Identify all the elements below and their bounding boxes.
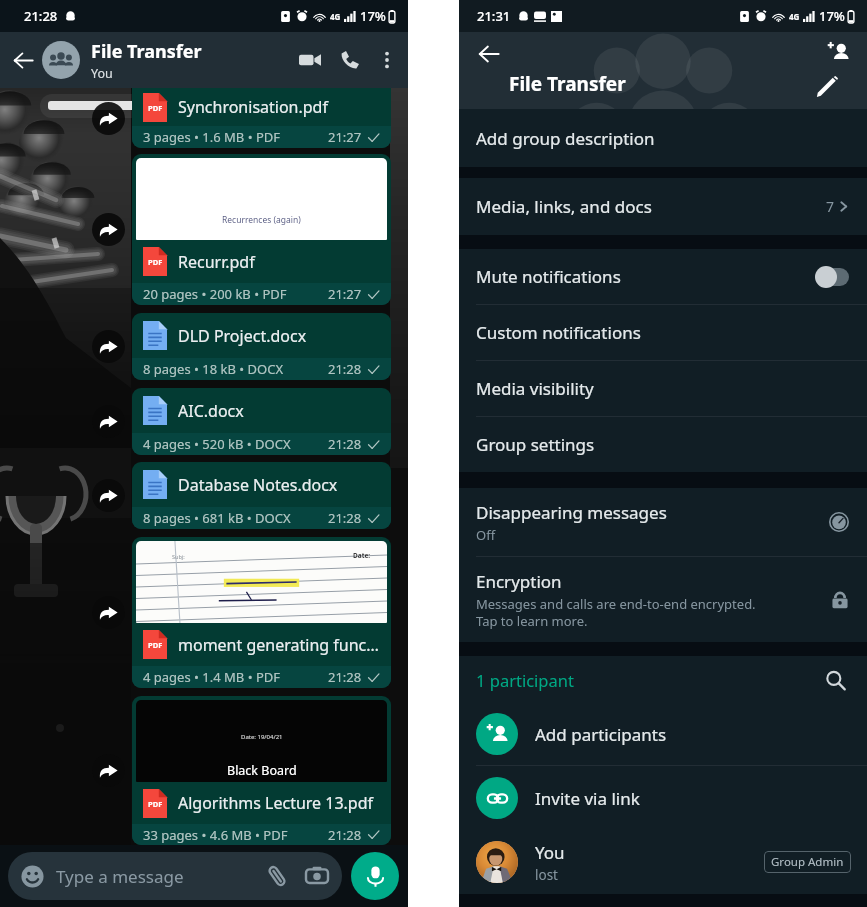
staticText: 21:28 xyxy=(328,360,362,378)
button[interactable]: Add participant xyxy=(821,35,855,69)
staticText: 7 xyxy=(826,197,835,216)
button[interactable]: You xyxy=(459,830,867,894)
button[interactable]: Forward xyxy=(92,596,125,629)
staticText: Custom notifications xyxy=(476,321,641,344)
staticText: 21:28 xyxy=(328,826,362,844)
button[interactable]: Edit group name xyxy=(811,71,843,103)
staticText: Algorithms Lecture 13.pdf xyxy=(178,792,374,814)
staticText: Messages and calls are end-to-end encryp… xyxy=(476,595,756,630)
staticText: PDF xyxy=(148,257,163,267)
button[interactable]: Custom notifications xyxy=(459,305,867,360)
staticText: 21:28 xyxy=(24,7,58,25)
staticText: DLD Project.docx xyxy=(178,325,307,347)
staticText: 3 pages • 1.6 MB • PDF xyxy=(143,128,281,146)
button[interactable]: Forward xyxy=(92,405,125,438)
staticText: 20 pages • 200 kB • PDF xyxy=(143,285,287,303)
staticText: 4 pages • 520 kB • DOCX xyxy=(143,435,291,453)
button[interactable]: PDF xyxy=(132,88,391,148)
staticText: File Transfer xyxy=(509,71,626,97)
staticText: Recurrences (again) xyxy=(222,214,301,226)
button[interactable]: Disappearing messages xyxy=(459,488,867,556)
button[interactable]: Media visibility xyxy=(459,361,867,416)
staticText: 21:28 xyxy=(328,668,362,686)
staticText: Black Board xyxy=(227,762,297,779)
staticText: Recurr.pdf xyxy=(178,251,255,273)
staticText: Off xyxy=(476,526,496,544)
button[interactable]: Media, links, and docs xyxy=(459,178,867,235)
staticText: 4 pages • 1.4 MB • PDF xyxy=(143,668,281,686)
button[interactable]: Forward xyxy=(92,330,125,363)
staticText: PDF xyxy=(148,799,163,809)
staticText: 21:28 xyxy=(328,435,362,453)
staticText: Subj: xyxy=(172,553,185,560)
staticText: 17% xyxy=(360,7,386,25)
staticText: Media visibility xyxy=(476,377,594,400)
staticText: Synchronisation.pdf xyxy=(178,96,328,118)
button[interactable]: Add participants xyxy=(459,703,867,765)
button[interactable]: Date: 19/04/21 xyxy=(132,696,391,845)
staticText: Database Notes.docx xyxy=(178,474,338,496)
button[interactable]: Forward xyxy=(92,102,125,135)
button[interactable]: Invite via link xyxy=(459,766,867,830)
button[interactable]: Video call xyxy=(290,40,330,80)
staticText: Encryption xyxy=(476,570,562,593)
button[interactable]: AIC.docx xyxy=(132,388,391,455)
staticText: moment generating funct… xyxy=(178,634,381,656)
button[interactable]: Voice call xyxy=(330,40,370,80)
button[interactable]: DLD Project.docx xyxy=(132,313,391,380)
staticText: 33 pages • 4.6 MB • PDF xyxy=(143,826,288,844)
staticText: AIC.docx xyxy=(178,400,244,422)
staticText: Disappearing messages xyxy=(476,501,667,524)
button[interactable]: Type a message xyxy=(8,852,342,900)
staticText: Type a message xyxy=(56,865,184,888)
staticText: 21:28 xyxy=(328,509,362,527)
button[interactable]: Encryption xyxy=(459,557,867,642)
staticText: 21:27 xyxy=(328,128,362,146)
button[interactable]: Recurrences (again) xyxy=(132,154,391,305)
button[interactable]: Forward xyxy=(92,754,125,787)
staticText: 21:27 xyxy=(328,285,362,303)
button[interactable]: Search participants xyxy=(819,664,851,696)
staticText: 8 pages • 681 kB • DOCX xyxy=(143,509,291,527)
staticText: Media, links, and docs xyxy=(476,195,652,218)
staticText: 4G xyxy=(330,11,341,22)
staticText: Add participants xyxy=(535,723,667,746)
button[interactable]: Voice message xyxy=(351,852,399,900)
staticText: Group Admin xyxy=(771,854,844,870)
button[interactable]: Forward xyxy=(92,213,125,246)
staticText: Group settings xyxy=(476,433,595,456)
staticText: PDF xyxy=(148,103,163,113)
staticText: 4G xyxy=(789,11,800,22)
staticText: Date: 19/04/21 xyxy=(241,733,283,741)
staticText: lost xyxy=(535,866,558,884)
staticText: File Transfer xyxy=(91,39,202,64)
button[interactable]: Back xyxy=(472,37,506,71)
staticText: Add group description xyxy=(476,127,655,150)
button[interactable]: Database Notes.docx xyxy=(132,462,391,529)
button[interactable]: Back xyxy=(6,43,40,77)
staticText: You xyxy=(535,841,565,864)
staticText: 1 participant xyxy=(476,669,574,691)
button[interactable]: Date: xyxy=(132,537,391,688)
staticText: PDF xyxy=(148,640,163,650)
button[interactable]: Group settings xyxy=(459,417,867,472)
staticText: 17% xyxy=(819,7,845,25)
staticText: Mute notifications xyxy=(476,265,621,288)
button[interactable]: Mute notifications xyxy=(459,249,867,304)
staticText: You xyxy=(91,65,113,82)
staticText: 21:31 xyxy=(477,7,511,25)
button[interactable]: Add group description xyxy=(459,109,867,167)
staticText: 8 pages • 18 kB • DOCX xyxy=(143,360,284,378)
button[interactable]: More options xyxy=(370,43,404,77)
button[interactable]: Forward xyxy=(92,479,125,512)
staticText: Date: xyxy=(353,551,371,560)
staticText: Invite via link xyxy=(535,787,640,810)
